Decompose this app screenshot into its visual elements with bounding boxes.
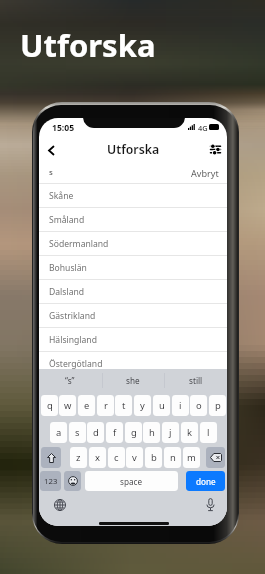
button[interactable]: 123 <box>40 471 61 491</box>
button[interactable]: “s” <box>39 369 101 392</box>
button[interactable]: Bohuslän <box>39 256 227 279</box>
staticText: she <box>126 375 140 386</box>
staticText: Bohuslän <box>49 262 87 274</box>
staticText: y <box>140 399 145 412</box>
button[interactable]: q <box>41 395 58 416</box>
staticText: Östergötland <box>49 358 103 370</box>
staticText: n <box>170 451 176 464</box>
button[interactable]: w <box>59 395 76 416</box>
button[interactable]: done <box>186 471 225 491</box>
staticText: k <box>187 426 193 439</box>
button[interactable]: s <box>69 422 86 443</box>
button[interactable]: Avbryt <box>189 164 220 182</box>
button[interactable]: Småland <box>39 208 227 231</box>
staticText: Hälsingland <box>49 334 97 346</box>
button[interactable]: Shift <box>41 447 61 468</box>
button[interactable]: y <box>134 395 151 416</box>
staticText: w <box>64 399 72 412</box>
staticText: m <box>187 451 196 464</box>
staticText: b <box>151 451 157 464</box>
staticText: 123 <box>44 476 58 487</box>
staticText: j <box>169 426 172 439</box>
staticText: o <box>196 399 202 412</box>
staticText: t <box>122 399 126 412</box>
button[interactable]: Östergötland <box>39 352 227 375</box>
staticText: p <box>215 399 221 412</box>
staticText: l <box>207 426 210 439</box>
button[interactable]: t <box>115 395 132 416</box>
button[interactable]: c <box>108 447 125 468</box>
button[interactable]: o <box>190 395 207 416</box>
button[interactable]: a <box>50 422 67 443</box>
staticText: Avbryt <box>191 167 219 179</box>
staticText: 4G <box>198 123 208 133</box>
button[interactable]: v <box>126 447 143 468</box>
button[interactable]: e <box>78 395 95 416</box>
button[interactable]: Filter <box>205 139 225 159</box>
button[interactable]: she <box>101 369 164 392</box>
button[interactable]: Dalsland <box>39 280 227 303</box>
staticText: s <box>75 426 80 439</box>
staticText: Utforska <box>107 141 160 158</box>
button[interactable]: n <box>164 447 181 468</box>
staticText: space <box>120 476 143 487</box>
staticText: Dalsland <box>49 286 85 298</box>
button[interactable]: Backspace <box>206 447 225 468</box>
staticText: z <box>76 451 81 464</box>
button[interactable]: Change keyboard <box>51 496 69 514</box>
button[interactable]: g <box>125 422 142 443</box>
button[interactable]: p <box>209 395 226 416</box>
staticText: a <box>56 426 62 439</box>
button[interactable]: i <box>172 395 189 416</box>
button[interactable]: b <box>145 447 162 468</box>
button[interactable]: Dictation <box>201 495 219 513</box>
staticText: done <box>196 476 216 487</box>
button[interactable]: space <box>85 471 178 491</box>
staticText: i <box>179 399 182 412</box>
staticText: q <box>47 399 53 412</box>
staticText: Gästrikland <box>49 310 96 322</box>
button[interactable]: h <box>143 422 160 443</box>
button[interactable]: Hälsingland <box>39 328 227 351</box>
staticText: Småland <box>49 214 85 226</box>
button[interactable]: l <box>200 422 217 443</box>
button[interactable]: k <box>181 422 198 443</box>
staticText: s <box>49 167 53 178</box>
button[interactable]: still <box>164 369 227 392</box>
staticText: h <box>149 426 155 439</box>
button[interactable]: Gästrikland <box>39 304 227 327</box>
staticText: g <box>131 426 137 439</box>
button[interactable]: Skåne <box>39 184 227 207</box>
button[interactable]: Back <box>41 140 61 160</box>
staticText: e <box>84 399 90 412</box>
staticText: Södermanland <box>49 238 109 250</box>
button[interactable]: Emoji <box>64 471 81 491</box>
button[interactable]: m <box>183 447 200 468</box>
staticText: c <box>114 451 119 464</box>
button[interactable]: z <box>70 447 87 468</box>
staticText: d <box>93 426 99 439</box>
staticText: “s” <box>65 375 75 386</box>
staticText: Skåne <box>49 190 74 202</box>
staticText: still <box>189 375 203 386</box>
button[interactable]: x <box>89 447 106 468</box>
staticText: 15:05 <box>52 122 75 134</box>
button[interactable]: Södermanland <box>39 232 227 255</box>
button[interactable]: f <box>106 422 123 443</box>
staticText: f <box>113 426 117 439</box>
button[interactable]: r <box>97 395 114 416</box>
button[interactable]: u <box>153 395 170 416</box>
staticText: u <box>159 399 165 412</box>
staticText: v <box>132 451 137 464</box>
staticText: Utforska <box>20 24 156 66</box>
button[interactable]: j <box>162 422 179 443</box>
button[interactable]: d <box>87 422 104 443</box>
staticText: x <box>95 451 100 464</box>
staticText: r <box>104 399 108 412</box>
